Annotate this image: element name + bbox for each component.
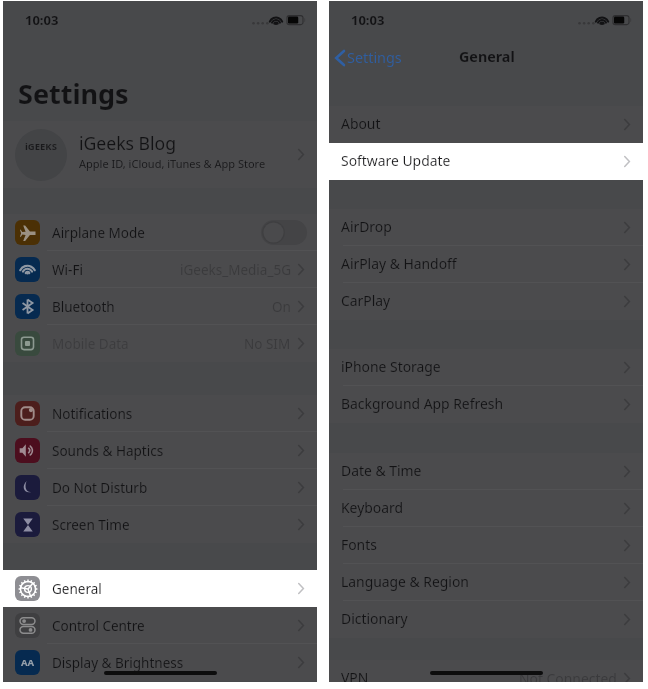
button[interactable]: Airplane Mode [3,214,317,251]
button[interactable]: Wi-Fi [3,251,317,288]
staticText: Bluetooth [52,298,115,316]
staticText: Control Centre [52,617,145,635]
staticText: Mobile Data [52,335,129,353]
button[interactable]: CarPlay [329,283,643,320]
button[interactable]: Date & Time [329,453,643,490]
staticText: Airplane Mode [52,224,145,242]
staticText: Wi-Fi [52,261,83,279]
button[interactable]: Background App Refresh [329,386,643,423]
staticText: iPhone Storage [341,357,441,376]
button[interactable]: About [329,106,643,143]
button[interactable]: Software Update [329,143,643,180]
staticText: Language & Region [341,572,469,591]
staticText: Do Not Disturb [52,479,148,497]
staticText: Keyboard [341,498,403,517]
staticText: Background App Refresh [341,394,503,413]
button[interactable]: iPhone Storage [329,349,643,386]
staticText: Fonts [341,535,377,554]
staticText: Display & Brightness [52,654,184,672]
button[interactable]: Keyboard [329,490,643,527]
button[interactable]: AirDrop [329,209,643,246]
staticText: Settings [18,75,129,112]
staticText: VPN [341,668,369,682]
staticText: Dictionary [341,609,408,628]
button[interactable]: AA [3,644,317,681]
staticText: Screen Time [52,516,130,534]
button[interactable]: Control Centre [3,607,317,644]
button[interactable]: Dictionary [329,601,643,638]
other: Airplane Mode toggle [261,220,307,245]
staticText: Notifications [52,405,133,423]
button[interactable]: General [3,570,317,607]
staticText: General [52,580,102,598]
button[interactable]: Sounds & Haptics [3,432,317,469]
staticText: 10:03 [25,11,59,29]
button[interactable]: VPN [329,660,643,682]
staticText: About [341,114,381,133]
staticText: iGeeks Blog [79,131,177,155]
button[interactable]: Language & Region [329,564,643,601]
staticText: Apple ID, iCloud, iTunes & App Store [79,156,266,171]
staticText: On [272,298,291,316]
staticText: AA [21,656,35,669]
staticText: Software Update [341,151,451,170]
button[interactable]: Back to Settings [331,45,408,71]
button[interactable]: Do Not Disturb [3,469,317,506]
staticText: Sounds & Haptics [52,442,164,460]
staticText: AirPlay & Handoff [341,254,457,273]
staticText: Not Connected [519,669,617,682]
staticText: AirDrop [341,217,392,236]
button[interactable]: AirPlay & Handoff [329,246,643,283]
button[interactable]: Notifications [3,395,317,432]
button[interactable]: iGEEKS [3,121,317,188]
button[interactable]: Screen Time [3,506,317,543]
staticText: iGeeks_Media_5G [180,261,291,279]
staticText: CarPlay [341,291,391,310]
staticText: Settings [347,48,402,68]
button[interactable]: Mobile Data [3,325,317,362]
button[interactable]: Fonts [329,527,643,564]
staticText: iGEEKS [25,140,57,153]
staticText: Date & Time [341,461,422,480]
staticText: No SIM [244,335,291,353]
staticText: 10:03 [351,11,385,29]
staticText: General [459,47,515,66]
button[interactable]: Bluetooth [3,288,317,325]
